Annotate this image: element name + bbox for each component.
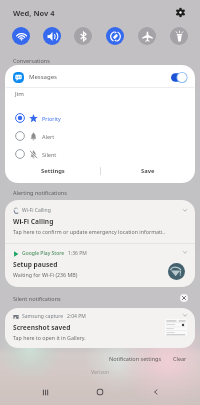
staticText: Wi-Fi Calling <box>13 217 54 226</box>
staticText: Wed, Nov 4 <box>13 8 55 18</box>
button[interactable]: Settings <box>5 162 100 180</box>
button[interactable]: Recents <box>31 379 59 405</box>
staticText: Silent notifications <box>13 295 61 302</box>
button[interactable]: Bluetooth <box>74 27 92 45</box>
button[interactable]: Back <box>142 379 170 405</box>
button[interactable]: Google Play Store <box>5 244 195 287</box>
staticText: Tap here to open it in Gallery. <box>13 334 86 341</box>
staticText: Alert <box>42 133 55 140</box>
button[interactable]: Alert <box>5 127 195 145</box>
staticText: Tap here to confirm or update emergency … <box>13 228 166 235</box>
staticText: Samsung capture <box>22 313 64 320</box>
button[interactable]: Airplane mode <box>138 27 156 45</box>
staticText: Wi-Fi Calling <box>22 207 51 214</box>
staticText: Setup paused <box>13 260 58 269</box>
button[interactable]: Settings <box>174 6 187 19</box>
button[interactable]: Home <box>86 379 114 405</box>
staticText: Settings <box>41 167 65 175</box>
staticText: Jim <box>15 90 24 98</box>
button[interactable]: Sound <box>43 27 61 45</box>
button[interactable]: Flashlight <box>170 27 188 45</box>
button[interactable]: Priority <box>5 109 195 127</box>
staticText: Messages <box>29 73 57 81</box>
button[interactable]: Samsung capture <box>5 308 195 348</box>
button[interactable]: Auto rotate <box>106 27 124 45</box>
staticText: 1:36 PM <box>68 250 87 257</box>
button[interactable]: Silent <box>5 145 195 163</box>
staticText: Save <box>141 167 155 175</box>
staticText: Google Play Store <box>22 250 65 257</box>
staticText: Clear <box>173 355 187 362</box>
staticText: Conversations <box>13 57 50 64</box>
button[interactable]: Wi-Fi Calling <box>5 200 195 243</box>
button[interactable]: Clear <box>171 353 189 364</box>
button[interactable]: Notification settings <box>107 353 164 364</box>
button[interactable]: Dismiss <box>178 292 190 304</box>
button[interactable]: Wi-Fi <box>12 27 30 45</box>
staticText: Screenshot saved <box>13 323 71 332</box>
staticText: Priority <box>42 115 61 122</box>
staticText: Waiting for Wi-Fi (236 MB) <box>13 271 78 278</box>
staticText: Verizon <box>91 368 110 375</box>
button[interactable]: Save <box>100 162 195 180</box>
staticText: Notification settings <box>109 355 162 362</box>
staticText: 2:04 PM <box>67 313 86 320</box>
button[interactable]: Conversation toggle <box>171 72 188 83</box>
staticText: Silent <box>42 151 57 158</box>
staticText: Alerting notifications <box>13 189 67 196</box>
